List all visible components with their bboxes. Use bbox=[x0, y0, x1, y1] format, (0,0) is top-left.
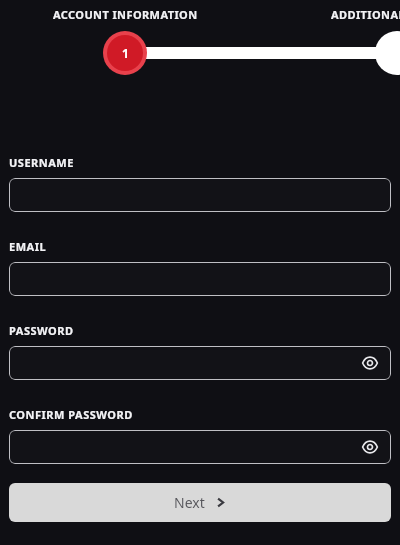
button[interactable]: Email bbox=[9, 262, 391, 296]
button[interactable]: Next bbox=[9, 483, 391, 522]
button[interactable]: Password bbox=[9, 346, 391, 380]
staticText: CONFIRM PASSWORD bbox=[9, 407, 133, 422]
staticText: PASSWORD bbox=[9, 323, 74, 338]
button[interactable]: Username bbox=[9, 178, 391, 212]
staticText: ADDITIONAL INFO bbox=[331, 7, 400, 22]
staticText: Next bbox=[174, 493, 205, 512]
button[interactable]: Confirm password bbox=[9, 430, 391, 464]
staticText: EMAIL bbox=[9, 239, 47, 254]
staticText: USERNAME bbox=[9, 155, 74, 170]
button[interactable]: Step 1: Account information bbox=[103, 31, 147, 75]
staticText: 1 bbox=[122, 45, 129, 61]
button[interactable]: Show password bbox=[359, 436, 381, 458]
button[interactable]: Show password bbox=[359, 352, 381, 374]
staticText: ACCOUNT INFORMATION bbox=[53, 7, 198, 22]
